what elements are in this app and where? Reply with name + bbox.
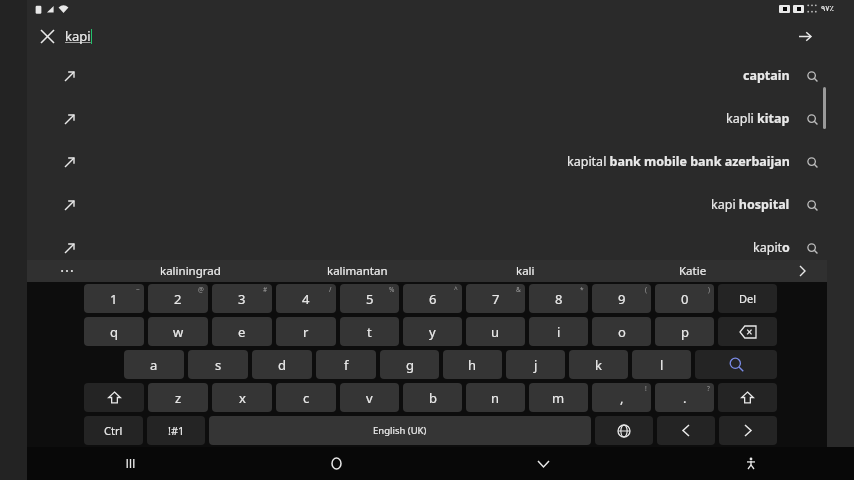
button[interactable]: Search: [790, 21, 820, 51]
button[interactable]: search: [695, 350, 777, 379]
button[interactable]: 0: [655, 284, 714, 313]
button[interactable]: ,: [592, 383, 651, 412]
staticText: i: [557, 323, 561, 341]
staticText: q: [110, 323, 118, 341]
button[interactable]: 2: [148, 284, 208, 313]
staticText: captain: [743, 67, 790, 84]
staticText: u: [491, 323, 500, 341]
staticText: ~: [136, 285, 140, 294]
staticText: t: [367, 323, 372, 341]
button[interactable]: 5: [340, 284, 399, 313]
button[interactable]: left: [657, 416, 715, 445]
button[interactable]: d: [252, 350, 312, 379]
button[interactable]: r: [276, 317, 336, 346]
button[interactable]: t: [340, 317, 399, 346]
button[interactable]: 9: [592, 284, 651, 313]
button[interactable]: p: [655, 317, 714, 346]
button[interactable]: Katie: [609, 260, 777, 282]
button[interactable]: j: [506, 350, 565, 379]
staticText: ): [708, 285, 710, 294]
button[interactable]: 7: [466, 284, 525, 313]
button[interactable]: kapito: [27, 226, 854, 269]
button[interactable]: kali: [441, 260, 609, 282]
button[interactable]: o: [592, 317, 651, 346]
button[interactable]: kapi hospital: [27, 183, 854, 226]
button[interactable]: Close: [32, 21, 62, 51]
staticText: m: [552, 389, 565, 407]
button[interactable]: English (UK): [209, 416, 591, 445]
staticText: e: [238, 323, 246, 341]
button[interactable]: a: [124, 350, 184, 379]
button[interactable]: e: [212, 317, 272, 346]
staticText: p: [681, 323, 689, 341]
button[interactable]: g: [380, 350, 439, 379]
staticText: z: [175, 389, 182, 407]
button[interactable]: shift: [84, 383, 144, 412]
button[interactable]: l: [632, 350, 691, 379]
staticText: 5: [366, 290, 374, 308]
staticText: English (UK): [373, 424, 427, 437]
button[interactable]: backspace: [718, 317, 777, 346]
button[interactable]: z: [148, 383, 208, 412]
button[interactable]: 6: [403, 284, 462, 313]
button[interactable]: i: [529, 317, 588, 346]
staticText: b: [429, 389, 437, 407]
button[interactable]: Ctrl: [84, 416, 143, 445]
button[interactable]: Recents: [27, 447, 233, 480]
button[interactable]: 4: [276, 284, 336, 313]
button[interactable]: Home: [233, 447, 440, 480]
staticText: kapi: [65, 27, 91, 45]
staticText: s: [215, 356, 222, 374]
button[interactable]: kaliningrad: [107, 260, 274, 282]
staticText: 8: [555, 290, 563, 308]
button[interactable]: h: [443, 350, 502, 379]
staticText: #: [263, 285, 268, 294]
staticText: .: [683, 389, 687, 407]
staticText: ?: [707, 384, 710, 393]
button[interactable]: x: [212, 383, 272, 412]
button[interactable]: Accessibility: [647, 447, 854, 480]
staticText: (: [645, 285, 647, 294]
button[interactable]: Hide keyboard: [440, 447, 647, 480]
button[interactable]: v: [340, 383, 399, 412]
button[interactable]: u: [466, 317, 525, 346]
staticText: d: [278, 356, 286, 374]
button[interactable]: globe: [595, 416, 653, 445]
staticText: 4: [302, 290, 310, 308]
staticText: r: [303, 323, 309, 341]
button[interactable]: m: [529, 383, 588, 412]
button[interactable]: c: [276, 383, 336, 412]
button[interactable]: f: [316, 350, 376, 379]
button[interactable]: right: [719, 416, 777, 445]
button[interactable]: kapital bank mobile bank azerbaijan: [27, 140, 854, 183]
staticText: !#1: [168, 423, 185, 438]
button[interactable]: q: [84, 317, 144, 346]
button[interactable]: 1: [84, 284, 144, 313]
button[interactable]: s: [188, 350, 248, 379]
button[interactable]: kapli kitap: [27, 97, 854, 140]
button[interactable]: shift: [718, 383, 777, 412]
staticText: 2: [174, 290, 182, 308]
staticText: *: [580, 285, 584, 294]
staticText: 1: [110, 290, 118, 308]
button[interactable]: 3: [212, 284, 272, 313]
button[interactable]: n: [466, 383, 525, 412]
button[interactable]: !#1: [147, 416, 205, 445]
staticText: 6: [429, 290, 437, 308]
staticText: kapito: [753, 239, 790, 256]
button[interactable]: .: [655, 383, 714, 412]
staticText: kapital bank mobile bank azerbaijan: [567, 153, 790, 170]
staticText: v: [366, 389, 373, 407]
button[interactable]: w: [148, 317, 208, 346]
staticText: ^: [454, 285, 458, 294]
button[interactable]: Del: [718, 284, 777, 313]
button[interactable]: Expand suggestions: [777, 260, 827, 282]
button[interactable]: captain: [27, 54, 854, 97]
button[interactable]: y: [403, 317, 462, 346]
button[interactable]: k: [569, 350, 628, 379]
button[interactable]: More options: [27, 260, 107, 282]
staticText: ,: [620, 389, 624, 407]
button[interactable]: kalimantan: [274, 260, 441, 282]
button[interactable]: 8: [529, 284, 588, 313]
button[interactable]: b: [403, 383, 462, 412]
